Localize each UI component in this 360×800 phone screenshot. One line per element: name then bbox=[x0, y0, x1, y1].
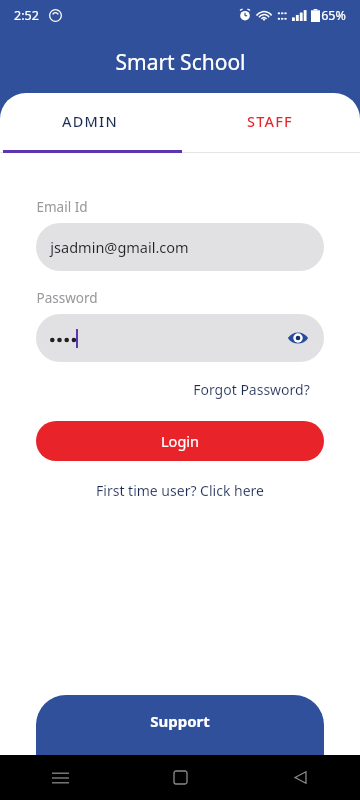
staticText: Login bbox=[161, 431, 199, 451]
staticText: Email Id bbox=[36, 198, 88, 216]
button[interactable]: STAFF bbox=[180, 93, 360, 149]
staticText: 2:52 bbox=[14, 7, 39, 24]
staticText: Support bbox=[150, 711, 210, 731]
button[interactable]: Support bbox=[36, 695, 324, 755]
button[interactable]: Forgot Password? bbox=[189, 376, 314, 403]
button[interactable]: First time user? Click here bbox=[92, 477, 268, 504]
button[interactable]: ADMIN bbox=[0, 93, 180, 149]
button[interactable]: Back bbox=[240, 755, 360, 800]
staticText: Password bbox=[36, 289, 98, 307]
button[interactable]: Show password bbox=[284, 324, 312, 352]
button[interactable]: Show password bbox=[36, 314, 324, 362]
staticText: jsadmin@gmail.com bbox=[50, 237, 189, 257]
button[interactable]: Login bbox=[36, 421, 324, 461]
staticText: Forgot Password? bbox=[193, 380, 310, 399]
staticText: 65% bbox=[321, 7, 346, 24]
staticText: STAFF bbox=[247, 111, 293, 131]
button[interactable]: jsadmin@gmail.com bbox=[36, 223, 324, 271]
staticText: First time user? Click here bbox=[96, 481, 264, 500]
button[interactable]: Home bbox=[120, 755, 240, 800]
staticText: Smart School bbox=[115, 48, 246, 77]
staticText: ADMIN bbox=[62, 111, 118, 131]
button[interactable]: Recents bbox=[0, 755, 120, 800]
